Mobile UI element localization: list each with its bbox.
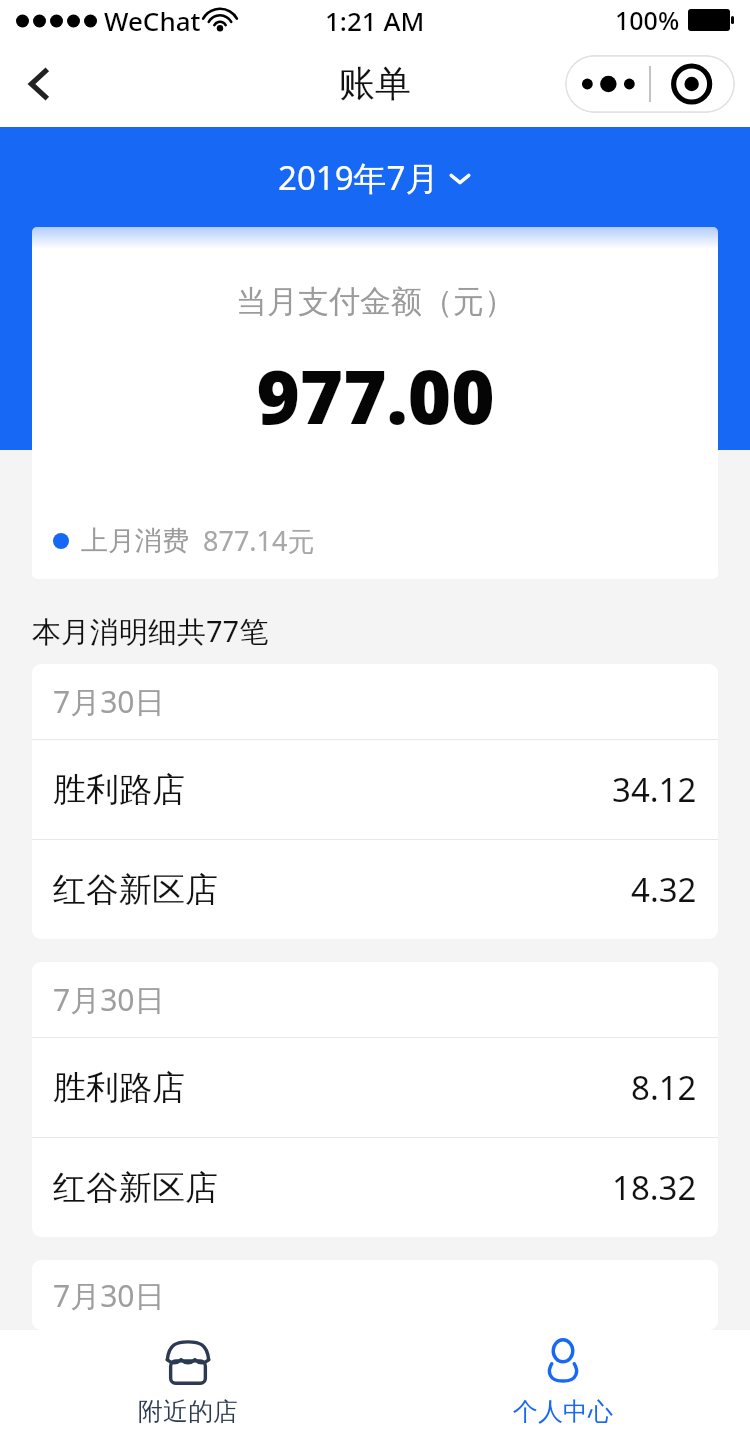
button[interactable]: 红谷新区店 <box>32 1138 718 1237</box>
staticText: 7月30日 <box>53 1275 165 1316</box>
button[interactable]: 胜利路店 <box>32 1038 718 1137</box>
staticText: 账单 <box>339 61 411 106</box>
button[interactable]: 红谷新区店 <box>32 840 718 939</box>
button[interactable]: More and close <box>565 55 735 113</box>
button[interactable]: 个人中心 <box>375 1330 750 1430</box>
staticText: 胜利路店 <box>53 1067 185 1109</box>
staticText: 977.00 <box>256 345 495 446</box>
button[interactable]: 2019年7月 <box>264 149 487 206</box>
staticText: 34.12 <box>612 767 697 812</box>
staticText: 当月支付金额（元） <box>236 282 515 321</box>
button[interactable]: 7月30日 <box>32 1260 718 1330</box>
staticText: 7月30日 <box>53 681 165 722</box>
staticText: 个人中心 <box>513 1396 613 1427</box>
staticText: 红谷新区店 <box>53 869 218 911</box>
button[interactable]: 附近的店 <box>0 1330 375 1430</box>
button[interactable]: 胜利路店 <box>32 740 718 839</box>
staticText: 8.12 <box>631 1065 697 1110</box>
staticText: 红谷新区店 <box>53 1167 218 1209</box>
staticText: 本月消明细共77笔 <box>32 611 269 651</box>
staticText: 4.32 <box>631 867 697 912</box>
staticText: 7月30日 <box>53 979 165 1020</box>
button[interactable]: Back <box>0 45 78 123</box>
staticText: 1:21 AM <box>325 3 425 38</box>
staticText: WeChat <box>104 3 201 38</box>
staticText: 100% <box>615 3 680 37</box>
button[interactable]: 当月支付金额（元） <box>32 227 718 579</box>
button[interactable]: 7月30日 <box>32 962 718 1037</box>
staticText: 上月消费 <box>81 524 189 558</box>
staticText: 18.32 <box>612 1165 697 1210</box>
staticText: 胜利路店 <box>53 769 185 811</box>
staticText: 877.14元 <box>203 522 315 559</box>
staticText: 2019年7月 <box>278 155 439 200</box>
staticText: 附近的店 <box>138 1396 238 1427</box>
button[interactable]: 7月30日 <box>32 664 718 739</box>
